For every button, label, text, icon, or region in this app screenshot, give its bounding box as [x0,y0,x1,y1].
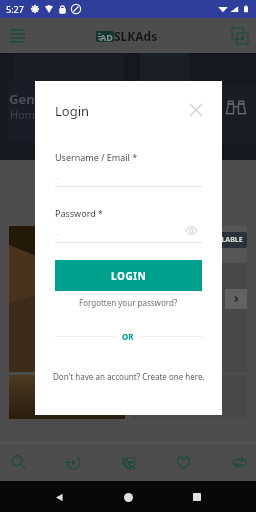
button[interactable]: AVAILABLE [131,226,247,372]
button[interactable]: Post ad [228,24,252,48]
staticText: AVAILABLE [205,235,243,245]
staticText: 5:27 [6,3,24,15]
staticText: OR [122,331,134,342]
button[interactable] [9,226,125,372]
staticText: Home [10,107,42,122]
button[interactable]: Back [49,487,69,507]
staticText: LOGIN [111,269,147,283]
button[interactable]: Favourites [164,443,202,481]
button[interactable] [131,375,247,419]
staticText: -- [55,228,61,239]
button[interactable]: Menu [4,23,30,49]
button[interactable]: Don't have an account? Create one here. [35,371,222,382]
button[interactable]: Login [53,443,91,481]
button[interactable]: Recents [187,487,207,507]
button[interactable]: LOGIN [55,260,202,291]
staticText: AD [100,31,113,42]
button[interactable]: Next [225,289,247,309]
staticText: Don't have an account? Create one here. [53,371,205,382]
staticText: SLKAds [114,28,158,44]
button[interactable]: Search [0,443,37,481]
button[interactable]: Home [118,487,138,507]
button[interactable]: Forgotten your password? [35,297,222,308]
staticText: Password * [55,207,104,219]
button[interactable]: Close [185,99,207,121]
staticText: Forgotten your password? [79,297,178,308]
staticText: Username / Email * [55,151,138,163]
staticText: Login [55,102,90,120]
staticText: -- [55,172,61,183]
button[interactable]: Call [109,443,147,481]
button[interactable]: Compare [220,443,256,481]
staticText: Genuine [9,90,64,108]
button[interactable] [9,375,125,419]
button[interactable]: Show password [183,222,199,238]
